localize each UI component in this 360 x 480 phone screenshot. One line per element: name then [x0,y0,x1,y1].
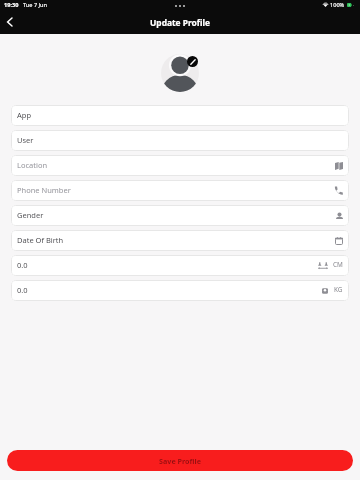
staticText: Gender [17,210,44,220]
button[interactable]: Location [11,155,349,176]
button[interactable]: App [11,105,349,126]
staticText: Phone Number [17,185,71,195]
staticText: Date Of Birth [17,235,64,245]
button[interactable]: Edit photo [187,56,198,67]
staticText: CM [333,260,343,269]
staticText: Location [17,160,48,170]
staticText: User [17,135,34,145]
staticText: KG [334,285,343,294]
button[interactable]: Back [0,14,20,34]
staticText: 19:30 [4,1,19,9]
button[interactable]: Phone Number [11,180,349,201]
staticText: Tue 7 Jun [23,1,47,9]
button[interactable]: Date Of Birth [11,230,349,251]
button[interactable]: User [11,130,349,151]
staticText: 100% [330,1,345,9]
staticText: App [17,110,32,120]
staticText: Update Profile [150,17,211,28]
button[interactable]: Gender [11,205,349,226]
button[interactable]: 0.0 [11,280,349,301]
staticText: 0.0 [17,260,28,270]
staticText: 0.0 [17,285,28,295]
button[interactable]: Save Profile [7,450,353,471]
button[interactable]: 0.0 [11,255,349,276]
staticText: Save Profile [159,456,201,466]
